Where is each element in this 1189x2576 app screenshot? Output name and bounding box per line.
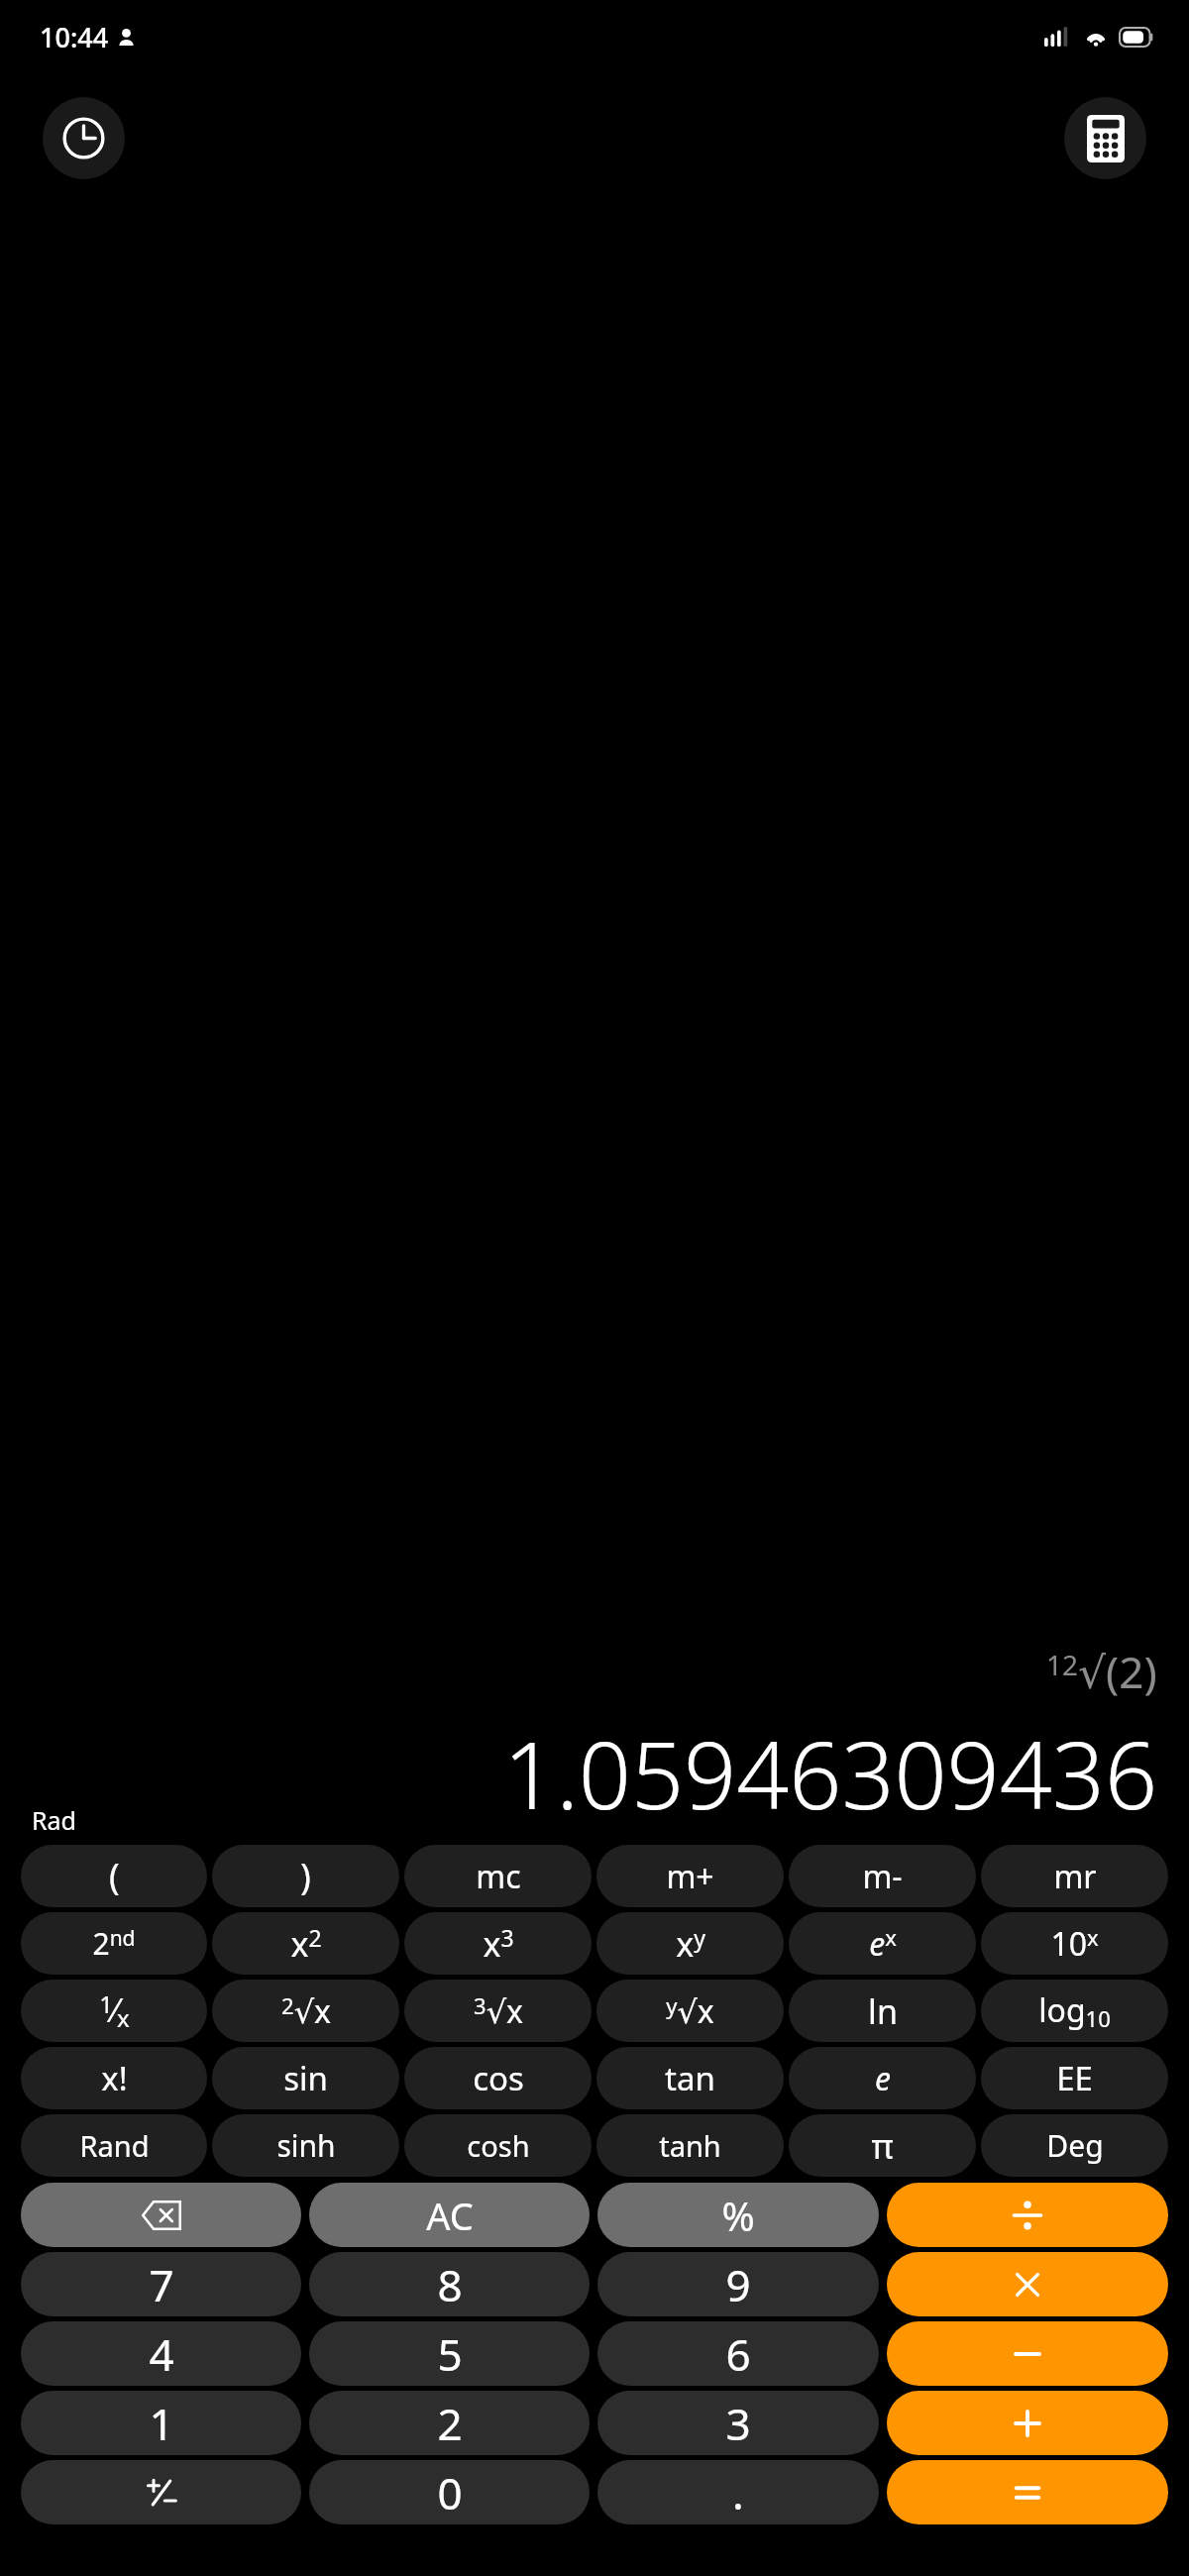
button[interactable]: 6 [597, 2321, 879, 2386]
button[interactable]: x2 [212, 1912, 399, 1975]
button[interactable]: 0 [309, 2460, 590, 2524]
staticText: Rad [32, 1803, 76, 1837]
button[interactable]: e [789, 2047, 976, 2109]
staticText: m- [862, 1855, 903, 1898]
button[interactable]: Subtract [887, 2321, 1168, 2386]
staticText: tan [665, 2056, 715, 2100]
staticText: xy [676, 1921, 705, 1967]
staticText: y√x [666, 1989, 714, 2033]
button[interactable]: Multiply [887, 2252, 1168, 2316]
staticText: 9 [725, 2255, 751, 2314]
staticText: x2 [290, 1921, 322, 1967]
button[interactable]: ex [789, 1912, 976, 1975]
button[interactable]: sinh [212, 2114, 399, 2177]
button[interactable]: 2 [309, 2391, 590, 2455]
staticText: ex [869, 1922, 897, 1966]
staticText: 3 [725, 2394, 751, 2453]
button[interactable]: mr [981, 1845, 1168, 1907]
button[interactable]: 1 [21, 2391, 301, 2455]
staticText: ln [868, 1988, 898, 2034]
button[interactable]: Equals [887, 2460, 1168, 2524]
staticText: ( [109, 1852, 120, 1900]
button[interactable]: 4 [21, 2321, 301, 2386]
staticText: 10:44 [40, 19, 109, 55]
staticText: 2√x [281, 1989, 331, 2033]
staticText: π [871, 2123, 894, 2169]
staticText: 3√x [474, 1989, 523, 2033]
button[interactable]: m+ [596, 1845, 784, 1907]
staticText: 1⁄x [99, 1987, 130, 2034]
button[interactable]: Add [887, 2391, 1168, 2455]
button[interactable]: 7 [21, 2252, 301, 2316]
button[interactable]: . [597, 2460, 879, 2524]
button[interactable]: 1⁄x [21, 1980, 207, 2042]
staticText: cos [473, 2056, 524, 2100]
staticText: 5 [437, 2324, 463, 2384]
button[interactable]: Deg [981, 2114, 1168, 2177]
button[interactable]: 3√x [404, 1980, 592, 2042]
button[interactable]: % [597, 2183, 879, 2247]
button[interactable]: Plus minus [21, 2460, 301, 2524]
staticText: sinh [276, 2125, 336, 2166]
button[interactable]: Rand [21, 2114, 207, 2177]
button[interactable]: ln [789, 1980, 976, 2042]
button[interactable]: mc [404, 1845, 592, 1907]
staticText: 2 [437, 2394, 463, 2453]
staticText: mr [1053, 1855, 1097, 1898]
staticText: Deg [1046, 2125, 1104, 2166]
staticText: 8 [437, 2255, 463, 2314]
staticText: x! [101, 2056, 128, 2100]
button[interactable]: π [789, 2114, 976, 2177]
staticText: 0 [437, 2463, 463, 2522]
button[interactable]: 2√x [212, 1980, 399, 2042]
staticText: 6 [725, 2324, 751, 2384]
staticText: 10x [1050, 1922, 1099, 1966]
button[interactable]: History [43, 97, 125, 179]
button[interactable]: x! [21, 2047, 207, 2109]
button[interactable]: m- [789, 1845, 976, 1907]
staticText: EE [1056, 2056, 1093, 2100]
staticText: % [721, 2189, 755, 2242]
button[interactable]: ) [212, 1845, 399, 1907]
staticText: 7 [149, 2255, 174, 2314]
staticText: mc [476, 1855, 521, 1898]
button[interactable]: xy [596, 1912, 784, 1975]
button[interactable]: ( [21, 1845, 207, 1907]
staticText: 1 [149, 2394, 174, 2453]
staticText: ) [300, 1852, 311, 1900]
button[interactable]: sin [212, 2047, 399, 2109]
button[interactable]: tan [596, 2047, 784, 2109]
button[interactable]: EE [981, 2047, 1168, 2109]
button[interactable]: cos [404, 2047, 592, 2109]
button[interactable]: 2nd [21, 1912, 207, 1975]
button[interactable]: 3 [597, 2391, 879, 2455]
button[interactable]: Divide [887, 2183, 1168, 2247]
button[interactable]: cosh [404, 2114, 592, 2177]
staticText: 12√(2) [1046, 1642, 1157, 1701]
button[interactable]: AC [309, 2183, 590, 2247]
staticText: . [732, 2463, 744, 2522]
button[interactable]: 10x [981, 1912, 1168, 1975]
staticText: cosh [467, 2126, 530, 2165]
staticText: AC [426, 2190, 474, 2241]
button[interactable]: Delete [21, 2183, 301, 2247]
button[interactable]: y√x [596, 1980, 784, 2042]
button[interactable]: x3 [404, 1912, 592, 1975]
button[interactable]: 5 [309, 2321, 590, 2386]
staticText: 2nd [92, 1923, 136, 1964]
button[interactable]: 8 [309, 2252, 590, 2316]
staticText: Rand [79, 2126, 150, 2165]
staticText: m+ [666, 1855, 714, 1898]
button[interactable]: Calculator mode [1064, 97, 1146, 179]
button[interactable]: 9 [597, 2252, 879, 2316]
staticText: tanh [659, 2126, 721, 2165]
button[interactable]: log10 [981, 1980, 1168, 2042]
button[interactable]: tanh [596, 2114, 784, 2177]
staticText: log10 [1038, 1988, 1111, 2033]
staticText: 1.05946309436 [82, 1711, 1157, 1837]
staticText: x3 [483, 1921, 514, 1967]
staticText: e [875, 2057, 891, 2100]
staticText: sin [283, 2056, 328, 2100]
staticText: 4 [149, 2324, 174, 2384]
